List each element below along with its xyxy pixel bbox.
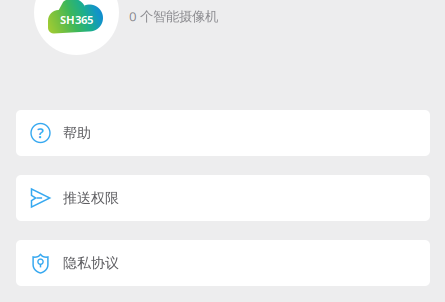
button[interactable]: ? [16,110,430,156]
staticText: ? [37,122,44,142]
staticText: 隐私协议 [63,254,119,272]
staticText: 帮助 [63,124,91,142]
button[interactable]: 推送权限 [16,175,430,221]
staticText: 0 个智能摄像机 [129,7,218,25]
staticText: 推送权限 [63,189,119,207]
button[interactable]: 隐私协议 [16,240,430,286]
staticText: SH365 [60,12,93,27]
